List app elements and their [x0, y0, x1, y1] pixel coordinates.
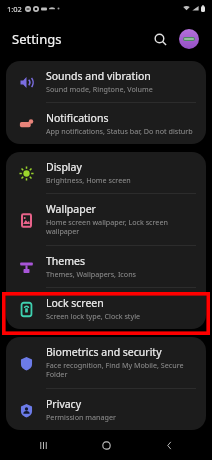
button[interactable]: Recent apps: [23, 430, 63, 460]
staticText: App notifications, Status bar, Do not di…: [46, 126, 193, 136]
button[interactable]: Lock screen: [6, 288, 206, 329]
staticText: Face recognition, Find My Mobile, Secure…: [46, 360, 194, 380]
staticText: Home screen wallpaper, Lock screen wallp…: [46, 217, 194, 237]
staticText: Notifications: [46, 111, 109, 125]
staticText: Display: [46, 160, 82, 174]
button[interactable]: Themes: [6, 246, 206, 288]
button[interactable]: Wallpaper: [6, 194, 206, 246]
staticText: Sounds and vibration: [46, 69, 151, 83]
button[interactable]: Back: [149, 430, 189, 460]
staticText: Permission manager: [46, 412, 117, 422]
staticText: Biometrics and security: [46, 345, 162, 359]
staticText: Lock screen: [46, 296, 104, 310]
staticText: Screen lock type, Clock style: [46, 311, 141, 321]
button[interactable]: Privacy: [6, 389, 206, 430]
button[interactable]: Notifications: [6, 103, 206, 144]
staticText: Wallpaper: [46, 202, 96, 216]
staticText: Settings: [12, 30, 62, 48]
button[interactable]: Biometrics and security: [6, 337, 206, 389]
button[interactable]: Account profile: [176, 26, 202, 52]
button[interactable]: Home: [86, 430, 126, 460]
staticText: 1:02: [7, 4, 22, 14]
staticText: Brightness, Home screen: [46, 175, 131, 185]
button[interactable]: Display: [6, 152, 206, 194]
button[interactable]: Sounds and vibration: [6, 61, 206, 103]
staticText: Themes: [46, 254, 86, 268]
button[interactable]: Search: [147, 26, 173, 52]
staticText: Privacy: [46, 397, 82, 411]
staticText: Themes, Wallpapers, Icons: [46, 269, 137, 279]
staticText: Sound mode, Ringtone, Volume: [46, 84, 153, 94]
